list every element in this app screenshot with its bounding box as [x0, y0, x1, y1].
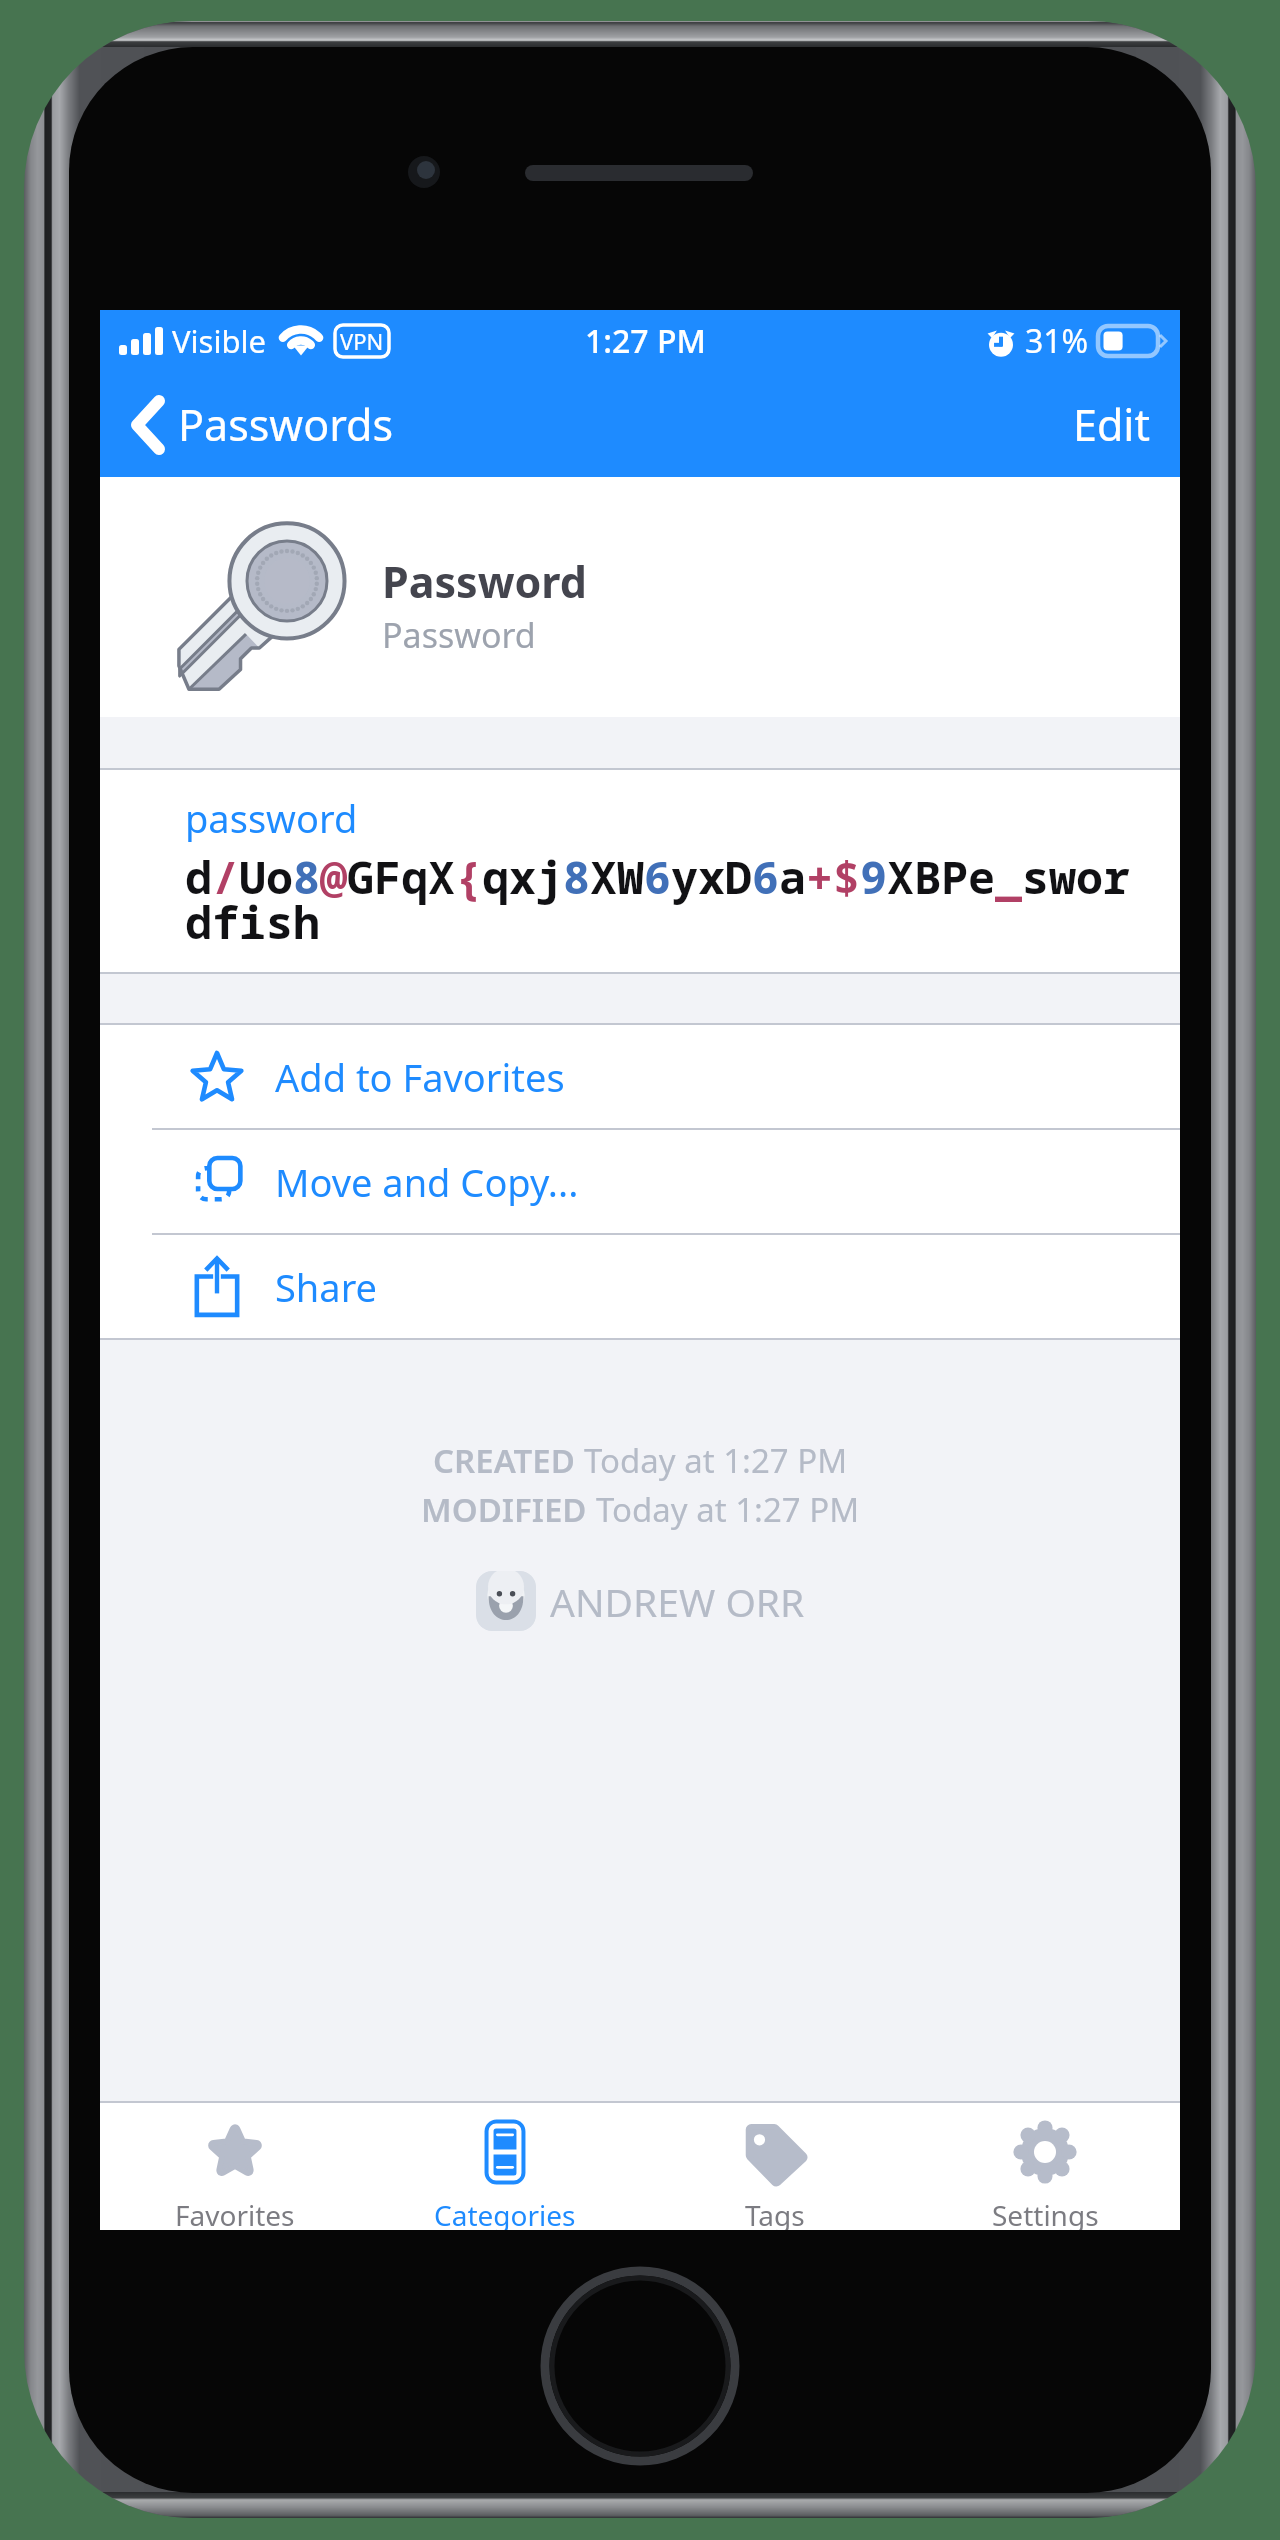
staticText: Visible — [172, 320, 266, 362]
button[interactable]: Passwords — [100, 385, 412, 464]
staticText: Password — [382, 612, 536, 658]
button[interactable]: Add to Favorites — [100, 1025, 1180, 1128]
staticText: Settings — [992, 2196, 1099, 2230]
staticText: ANDREW ORR — [550, 1575, 805, 1628]
staticText: 1:27 PM — [585, 319, 706, 363]
button[interactable]: Share — [100, 1235, 1180, 1338]
staticText: password — [185, 792, 358, 844]
staticText: Edit — [1073, 395, 1150, 454]
staticText: Categories — [434, 2196, 576, 2230]
staticText: Add to Favorites — [275, 1051, 565, 1103]
staticText: CREATED — [433, 1438, 584, 1483]
staticText: Today at 1:27 PM — [584, 1438, 848, 1483]
staticText: Move and Copy... — [275, 1156, 579, 1208]
staticText: d/Uo8@GFqX{qxj8XW6yxD6a+$9XBPe_swor dfis… — [185, 846, 1131, 953]
button[interactable]: Favorites — [100, 2103, 370, 2230]
staticText: MODIFIED — [421, 1487, 596, 1532]
staticText: Password — [382, 552, 587, 611]
staticText: Share — [275, 1261, 378, 1313]
button[interactable]: Edit — [1043, 381, 1180, 468]
staticText: Passwords — [178, 395, 394, 454]
button[interactable]: Tags — [640, 2103, 910, 2230]
button[interactable]: Settings — [910, 2103, 1180, 2230]
staticText: Tags — [745, 2196, 805, 2230]
staticText: Today at 1:27 PM — [596, 1487, 860, 1532]
staticText: VPN — [340, 326, 384, 356]
staticText: 31% — [1025, 319, 1089, 363]
staticText: Favorites — [175, 2196, 295, 2230]
button[interactable]: Move and Copy... — [100, 1130, 1180, 1233]
button[interactable]: Categories — [370, 2103, 640, 2230]
